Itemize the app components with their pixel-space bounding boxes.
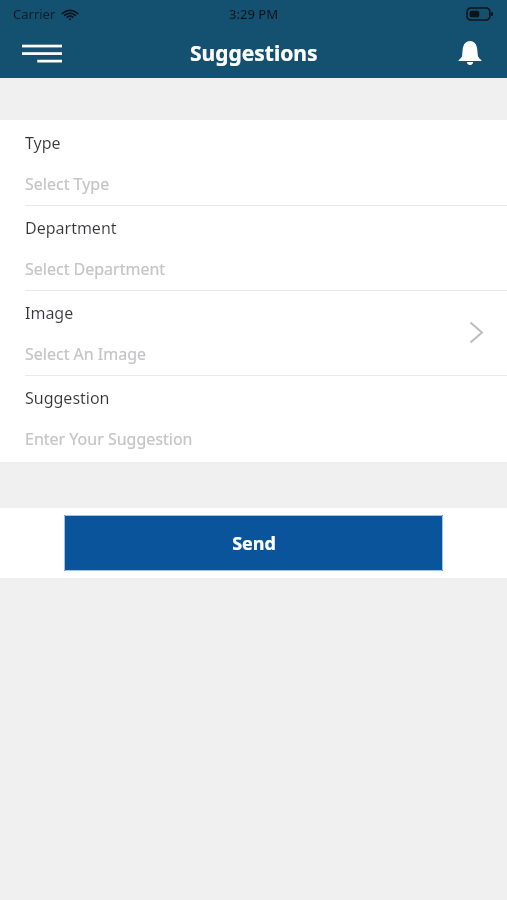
staticText: Select Department xyxy=(25,258,166,280)
button[interactable]: Suggestion xyxy=(0,375,507,460)
staticText: Suggestions xyxy=(190,39,318,68)
staticText: Department xyxy=(25,217,117,239)
button[interactable]: Image xyxy=(0,290,507,375)
button[interactable]: Notifications xyxy=(447,30,493,76)
staticText: Enter Your Suggestion xyxy=(25,428,193,450)
button[interactable]: Open navigation menu xyxy=(18,31,66,75)
staticText: Send xyxy=(232,531,276,556)
staticText: Select An Image xyxy=(25,343,147,365)
staticText: Image xyxy=(25,302,74,324)
staticText: Carrier xyxy=(13,5,56,23)
staticText: Select Type xyxy=(25,173,110,195)
button[interactable]: Department xyxy=(0,205,507,290)
staticText: 3:29 PM xyxy=(229,5,279,23)
button[interactable]: Send xyxy=(64,515,443,571)
button[interactable]: Type xyxy=(0,120,507,205)
staticText: Suggestion xyxy=(25,387,110,409)
staticText: Type xyxy=(25,132,61,154)
